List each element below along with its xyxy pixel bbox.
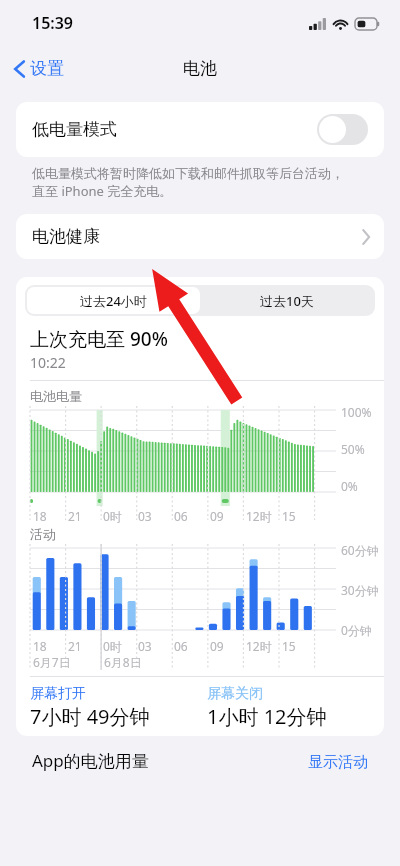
staticText: 低电量模式将暂时降低如下载和邮件抓取等后台活动， 直至 iPhone 完全充电。 [32,165,344,200]
staticText: 过去10天 [260,292,314,310]
button[interactable]: 屏幕打开 [30,685,207,730]
staticText: 电池 [183,58,217,79]
staticText: 50% [341,441,365,457]
staticText: 6月7日 [33,654,71,670]
staticText: 0% [341,478,358,494]
staticText: 21 [68,638,82,654]
button[interactable]: 屏幕关闭 [207,685,384,730]
staticText: 过去24小时 [80,292,147,310]
button[interactable]: 显示活动 [308,753,368,772]
staticText: 上次充电至 90% [30,326,168,352]
staticText: 电池电量 [30,388,82,404]
staticText: 06 [174,508,188,524]
staticText: 18 [33,638,47,654]
staticText: 30分钟 [341,582,379,598]
staticText: 60分钟 [341,542,379,558]
staticText: 15 [282,638,296,654]
staticText: 屏幕打开 [30,685,86,703]
other: Low Power Mode toggle [317,114,368,145]
button[interactable]: 过去24小时 [27,287,200,314]
button[interactable]: 电池健康 [16,214,384,259]
staticText: 设置 [30,58,64,79]
staticText: 09 [210,638,224,654]
staticText: 0分钟 [341,622,372,638]
staticText: 7小时 49分钟 [30,703,150,730]
staticText: 12时 [246,638,272,654]
staticText: 06 [174,638,188,654]
staticText: 电池健康 [32,226,362,247]
staticText: 09 [210,508,224,524]
button[interactable]: 过去10天 [200,287,373,314]
staticText: App的电池用量 [32,749,308,772]
staticText: 15 [282,508,296,524]
staticText: 12时 [246,508,272,524]
staticText: 03 [138,638,152,654]
staticText: 活动 [30,526,56,542]
staticText: 6月8日 [104,654,142,670]
staticText: 0时 [103,508,122,524]
staticText: 10:22 [30,353,66,372]
staticText: 21 [68,508,82,524]
button[interactable]: 设置 [8,54,70,83]
staticText: 屏幕关闭 [207,685,263,703]
staticText: 1小时 12分钟 [207,703,327,730]
staticText: 低电量模式 [32,119,317,140]
staticText: 18 [33,508,47,524]
staticText: 15:39 [32,12,74,34]
staticText: 0时 [103,638,122,654]
staticText: 100% [341,404,372,420]
staticText: 03 [138,508,152,524]
button[interactable]: 低电量模式 [16,102,384,157]
